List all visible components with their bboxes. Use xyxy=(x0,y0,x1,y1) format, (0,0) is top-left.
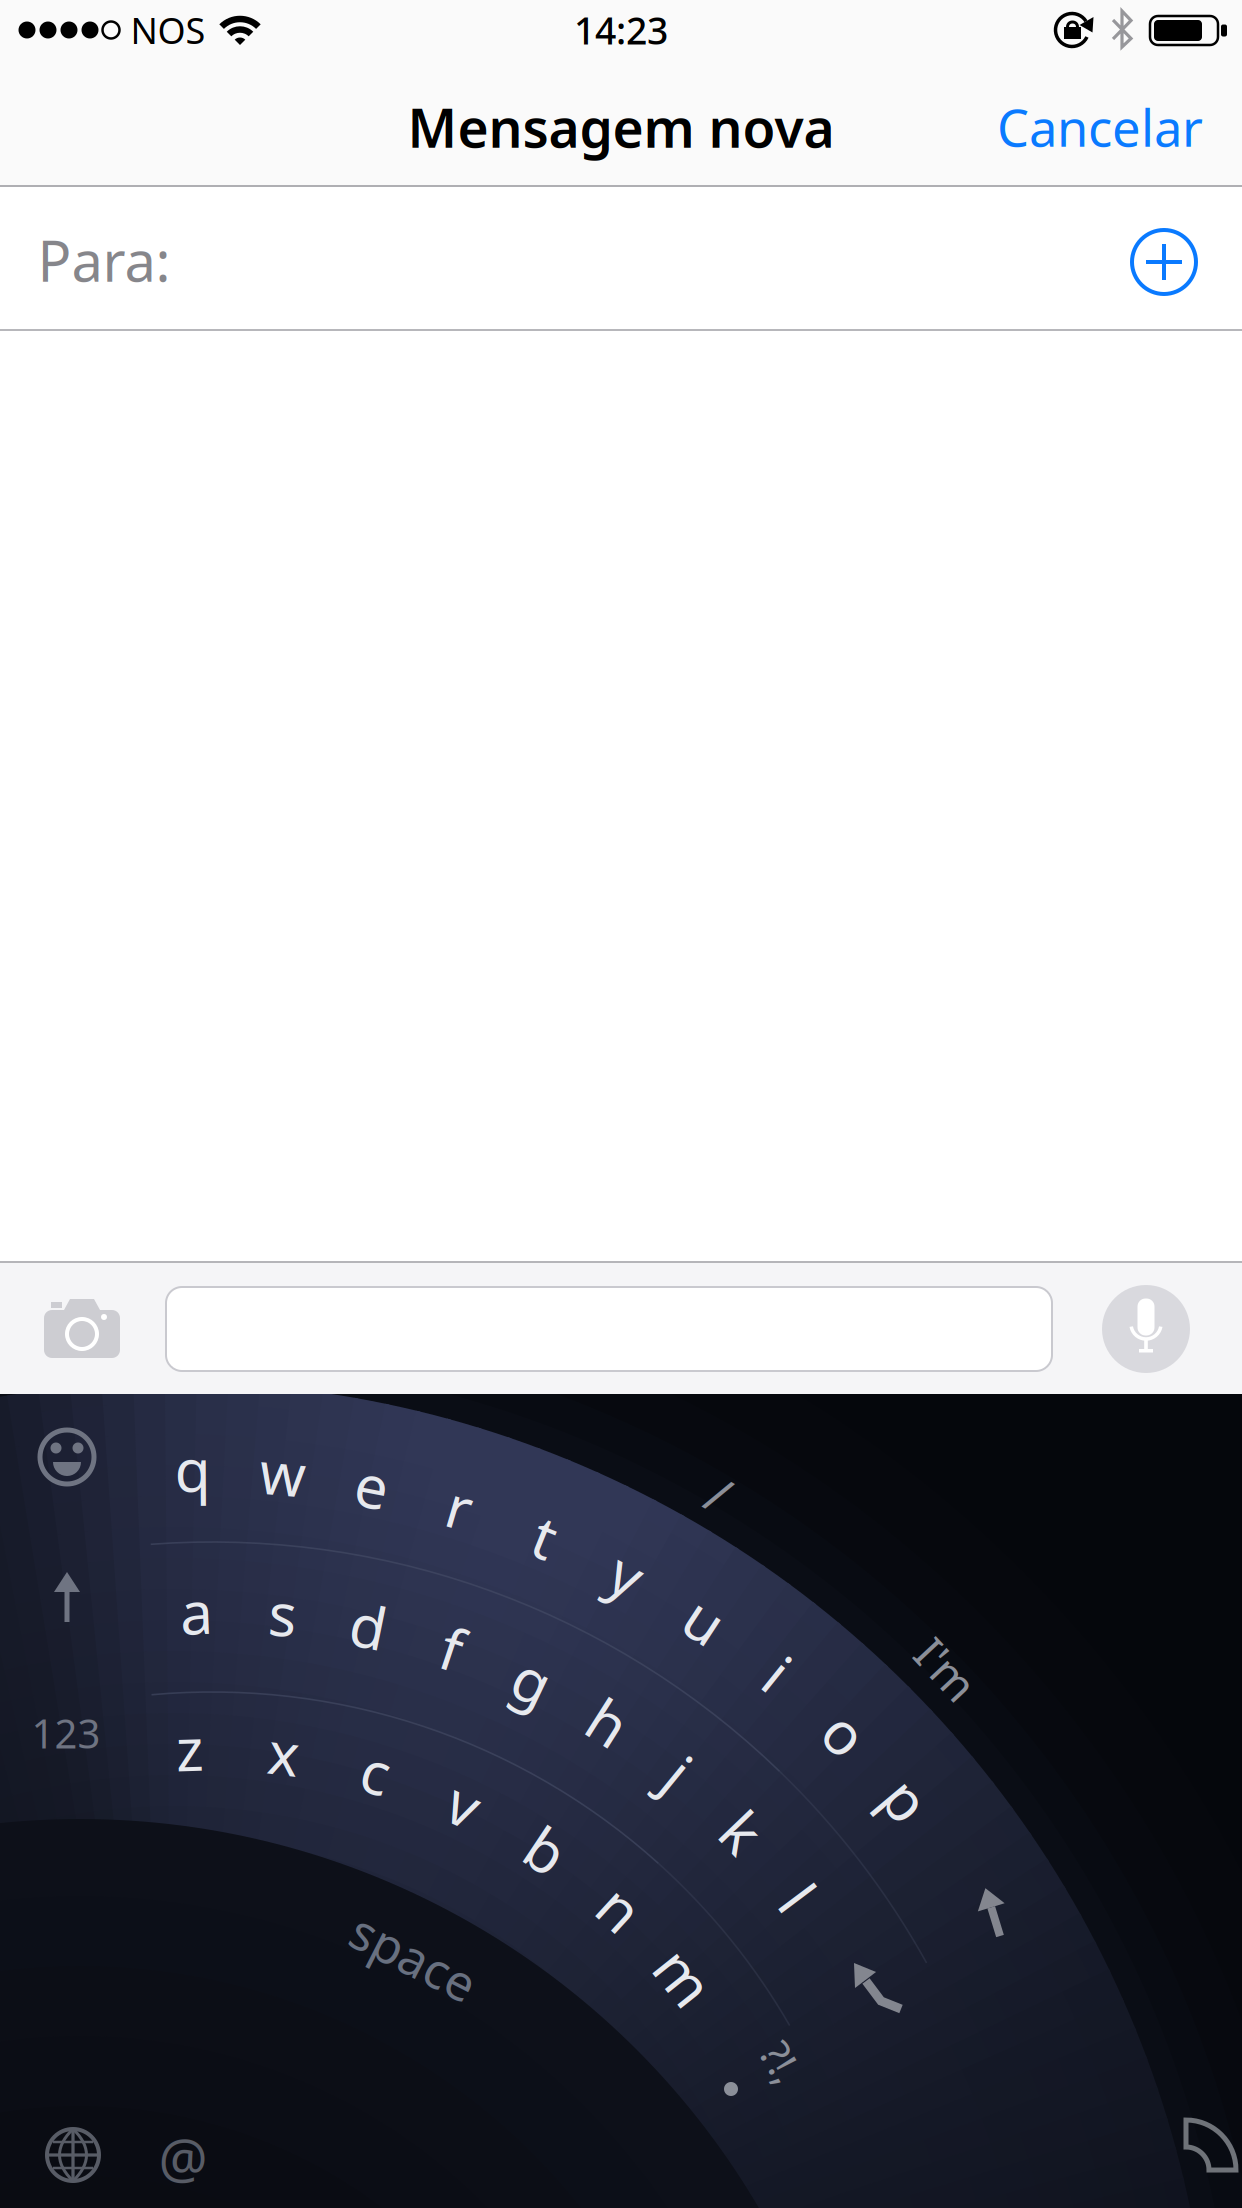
button[interactable] xyxy=(0,0,1242,2208)
button[interactable]: o xyxy=(827,1694,862,1772)
button[interactable]: space xyxy=(347,1924,481,1990)
staticText: y xyxy=(612,1535,642,1613)
button[interactable]: d xyxy=(350,1587,386,1664)
button[interactable]: y xyxy=(612,1535,642,1613)
staticText: d xyxy=(350,1587,386,1664)
staticText: i xyxy=(770,1634,785,1712)
staticText: NOS xyxy=(130,6,205,54)
button[interactable]: w xyxy=(260,1434,306,1512)
button[interactable]: s xyxy=(269,1574,297,1652)
button[interactable]: k xyxy=(726,1793,757,1870)
button[interactable]: n xyxy=(602,1869,638,1947)
button[interactable]: Cancelar xyxy=(997,93,1203,161)
button[interactable] xyxy=(0,0,1242,2208)
staticText: g xyxy=(514,1641,550,1719)
staticText: r xyxy=(448,1468,472,1546)
staticText: o xyxy=(827,1694,862,1772)
staticText: 123 xyxy=(31,1706,100,1759)
button[interactable]: p xyxy=(888,1760,924,1838)
button[interactable]: e xyxy=(356,1446,389,1524)
button[interactable]: z xyxy=(176,1709,204,1787)
staticText: Para: xyxy=(37,223,170,297)
button[interactable] xyxy=(0,0,1242,2208)
staticText: I'm xyxy=(913,1639,979,1699)
staticText: j xyxy=(671,1734,686,1812)
button[interactable]: m xyxy=(657,1938,712,2016)
button[interactable]: ?!, xyxy=(762,2035,802,2089)
staticText: t xyxy=(534,1497,555,1575)
staticText: w xyxy=(260,1434,306,1512)
button[interactable]: @ xyxy=(158,2121,207,2193)
staticText: ?!, xyxy=(762,2035,802,2089)
button[interactable] xyxy=(0,0,1242,2208)
staticText: s xyxy=(269,1574,297,1652)
staticText: e xyxy=(356,1446,389,1524)
button[interactable] xyxy=(0,0,1242,2208)
button[interactable]: j xyxy=(671,1734,686,1812)
button[interactable]: 123 xyxy=(31,1706,100,1759)
button[interactable]: / xyxy=(709,1460,728,1528)
button[interactable]: I'm xyxy=(913,1639,979,1699)
button[interactable] xyxy=(0,0,1242,2208)
button[interactable]: Para: xyxy=(37,223,170,297)
button[interactable]: g xyxy=(514,1641,550,1719)
staticText: l xyxy=(790,1858,805,1936)
button[interactable]: c xyxy=(362,1732,390,1810)
staticText: a xyxy=(180,1573,213,1650)
button[interactable]: h xyxy=(590,1683,626,1761)
staticText: u xyxy=(687,1581,723,1659)
button[interactable]: v xyxy=(449,1765,479,1843)
button[interactable] xyxy=(0,0,1242,2208)
button[interactable] xyxy=(0,0,1242,2208)
button[interactable]: u xyxy=(687,1581,723,1659)
staticText: space xyxy=(347,1924,481,1990)
staticText: z xyxy=(176,1709,204,1787)
button[interactable]: t xyxy=(534,1497,555,1575)
staticText: q xyxy=(175,1430,211,1508)
button[interactable]: x xyxy=(268,1714,299,1792)
button[interactable]: i xyxy=(770,1634,785,1712)
staticText: f xyxy=(442,1609,462,1687)
button[interactable]: r xyxy=(448,1468,472,1546)
staticText: m xyxy=(657,1938,712,2016)
button[interactable]: a xyxy=(180,1573,213,1650)
button[interactable]: q xyxy=(175,1430,211,1508)
button[interactable]: l xyxy=(790,1858,805,1936)
button[interactable] xyxy=(0,0,1242,2208)
staticText: / xyxy=(709,1460,728,1528)
staticText: @ xyxy=(158,2121,207,2193)
staticText: c xyxy=(362,1732,390,1810)
button[interactable] xyxy=(0,0,1242,2208)
staticText: k xyxy=(726,1793,757,1870)
staticText: p xyxy=(888,1760,924,1838)
staticText: v xyxy=(449,1765,479,1843)
staticText: Mensagem nova xyxy=(407,92,834,162)
button[interactable] xyxy=(166,1287,1052,1371)
button[interactable]: b xyxy=(528,1811,564,1889)
staticText: b xyxy=(528,1811,564,1889)
staticText: h xyxy=(590,1683,626,1761)
staticText: x xyxy=(268,1714,299,1792)
staticText: Cancelar xyxy=(997,93,1203,161)
staticText: n xyxy=(602,1869,638,1947)
staticText: 14:23 xyxy=(574,5,668,55)
button[interactable]: f xyxy=(442,1609,462,1687)
